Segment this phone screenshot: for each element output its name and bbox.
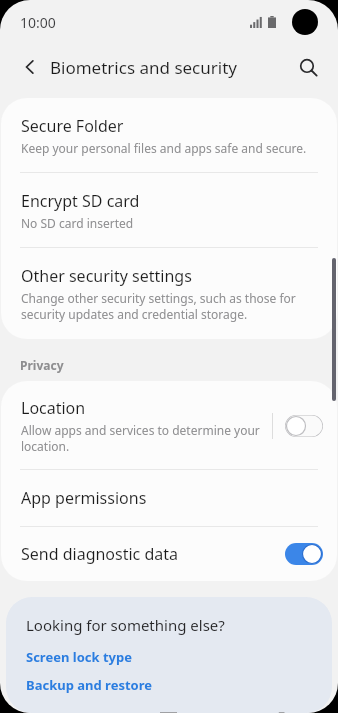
button[interactable]: Encrypt SD card <box>1 173 337 247</box>
staticText: Privacy <box>20 357 64 373</box>
button[interactable]: Toggle off <box>285 415 323 437</box>
staticText: Backup and restore <box>26 676 152 694</box>
button[interactable]: App permissions <box>1 470 337 526</box>
staticText: Allow apps and services to determine you… <box>21 422 262 454</box>
button[interactable]: Search <box>288 47 328 87</box>
button[interactable]: Screen lock type <box>26 648 132 666</box>
staticText: 10:00 <box>20 13 56 32</box>
staticText: Location <box>21 397 86 419</box>
staticText: Looking for something else? <box>26 615 225 635</box>
staticText: Screen lock type <box>26 648 132 666</box>
button[interactable]: Send diagnostic data <box>1 527 337 581</box>
button[interactable]: Location <box>1 381 337 469</box>
staticText: Biometrics and security <box>50 56 237 79</box>
staticText: Secure Folder <box>21 115 124 137</box>
staticText: Change other security settings, such as … <box>21 290 323 322</box>
staticText: Keep your personal files and apps safe a… <box>21 140 307 156</box>
staticText: Encrypt SD card <box>21 190 140 212</box>
button[interactable]: Back <box>10 47 50 87</box>
button[interactable]: Toggle on <box>285 543 323 565</box>
button[interactable]: Other security settings <box>1 248 337 339</box>
staticText: App permissions <box>21 487 147 509</box>
staticText: Other security settings <box>21 265 192 287</box>
button[interactable]: Backup and restore <box>26 676 152 694</box>
staticText: No SD card inserted <box>21 215 134 231</box>
button[interactable]: Secure Folder <box>1 98 337 172</box>
staticText: Send diagnostic data <box>21 543 179 565</box>
